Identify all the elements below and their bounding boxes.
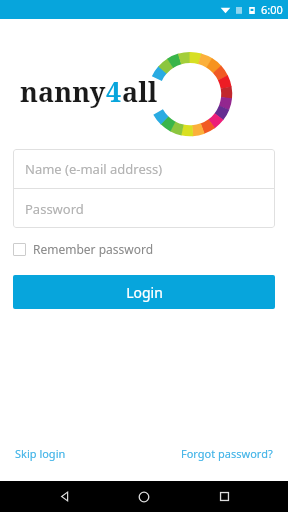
button[interactable]: Back [48,481,80,512]
button[interactable]: Skip login [13,444,68,463]
button[interactable]: Forgot password? [179,444,275,463]
button[interactable]: Login [13,275,275,309]
staticText: 6:00 [261,2,283,17]
button[interactable]: Home [128,481,160,512]
staticText: all [122,73,158,110]
button[interactable]: Remember password [13,241,154,257]
button[interactable]: Password [13,189,275,228]
staticText: Name (e-mail address) [25,160,163,178]
staticText: 4 [106,73,122,110]
staticText: Password [25,200,84,218]
staticText: nanny [20,73,106,110]
staticText: Login [126,283,163,302]
button[interactable]: Name (e-mail address) [13,149,275,188]
button[interactable]: Recent apps [208,481,240,512]
staticText: Remember password [33,241,154,257]
